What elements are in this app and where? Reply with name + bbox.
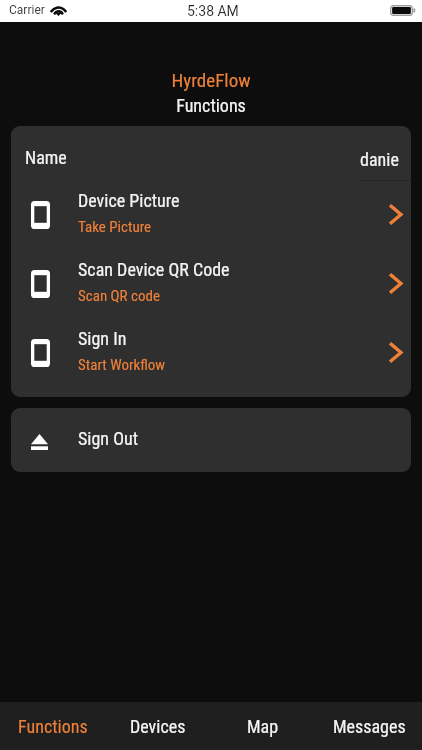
other: Open Device Picture xyxy=(389,204,403,225)
staticText: Carrier xyxy=(9,3,45,17)
staticText: Scan QR code xyxy=(78,287,160,305)
button[interactable]: Name xyxy=(11,126,411,181)
staticText: Sign Out xyxy=(78,428,139,449)
staticText: Functions xyxy=(0,95,422,116)
staticText: Start Workflow xyxy=(78,356,166,374)
button[interactable]: Functions xyxy=(0,702,105,750)
button[interactable]: Sign In xyxy=(11,319,411,388)
button[interactable]: Messages xyxy=(316,702,422,750)
staticText: Functions xyxy=(18,716,88,737)
button[interactable]: Device Picture xyxy=(11,181,411,250)
button[interactable]: Scan Device QR Code xyxy=(11,250,411,319)
staticText: Take Picture xyxy=(78,218,152,236)
staticText: HyrdeFlow xyxy=(0,69,422,91)
staticText: Devices xyxy=(130,716,186,737)
staticText: Scan Device QR Code xyxy=(78,259,230,280)
other: Sign out xyxy=(31,434,48,450)
other: Open Scan Device QR Code xyxy=(389,273,403,294)
staticText: Map xyxy=(247,716,279,737)
button[interactable]: Devices xyxy=(105,702,210,750)
other: Open Sign In xyxy=(389,342,403,363)
staticText: Messages xyxy=(333,716,406,737)
button[interactable]: Map xyxy=(210,702,316,750)
other: Wi-Fi signal xyxy=(51,5,66,16)
staticText: Sign In xyxy=(78,328,127,349)
staticText: danie xyxy=(360,149,399,170)
staticText: Name xyxy=(25,147,67,168)
other: Battery full xyxy=(390,5,415,16)
staticText: 5:38 AM xyxy=(187,3,239,19)
button[interactable]: Sign out xyxy=(11,408,411,472)
staticText: Device Picture xyxy=(78,190,180,211)
